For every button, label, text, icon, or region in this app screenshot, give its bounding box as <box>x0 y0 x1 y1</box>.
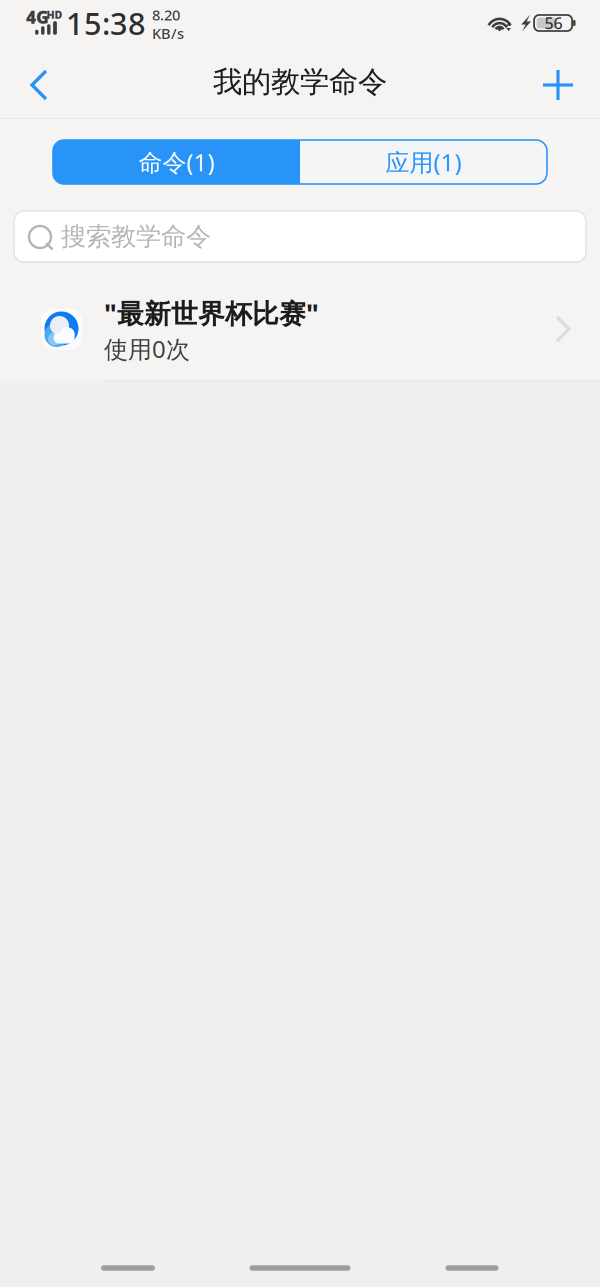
staticText: 15:38 <box>66 3 146 43</box>
staticText: 使用0次 <box>104 333 190 365</box>
button[interactable]: Back <box>0 46 68 118</box>
staticText: 4G <box>26 5 49 28</box>
staticText: 56 <box>545 12 563 34</box>
button[interactable]: "最新世界杯比赛" <box>0 270 600 381</box>
button[interactable]: Add <box>527 46 600 118</box>
staticText: 搜索教学命令 <box>61 221 211 252</box>
button[interactable]: 命令(1) <box>53 140 300 184</box>
staticText: 命令(1) <box>138 146 214 178</box>
staticText: KB/s <box>152 23 184 43</box>
button[interactable]: 应用(1) <box>300 140 547 184</box>
button[interactable]: Back <box>400 1245 600 1287</box>
button[interactable]: 搜索教学命令 <box>0 211 600 270</box>
staticText: HD <box>46 7 62 22</box>
staticText: 我的教学命令 <box>213 64 387 100</box>
staticText: 8.20 <box>152 5 180 24</box>
staticText: 应用(1) <box>385 146 461 178</box>
button[interactable]: Recents <box>0 1245 200 1287</box>
staticText: "最新世界杯比赛" <box>104 295 319 331</box>
button[interactable]: Home <box>200 1245 400 1287</box>
